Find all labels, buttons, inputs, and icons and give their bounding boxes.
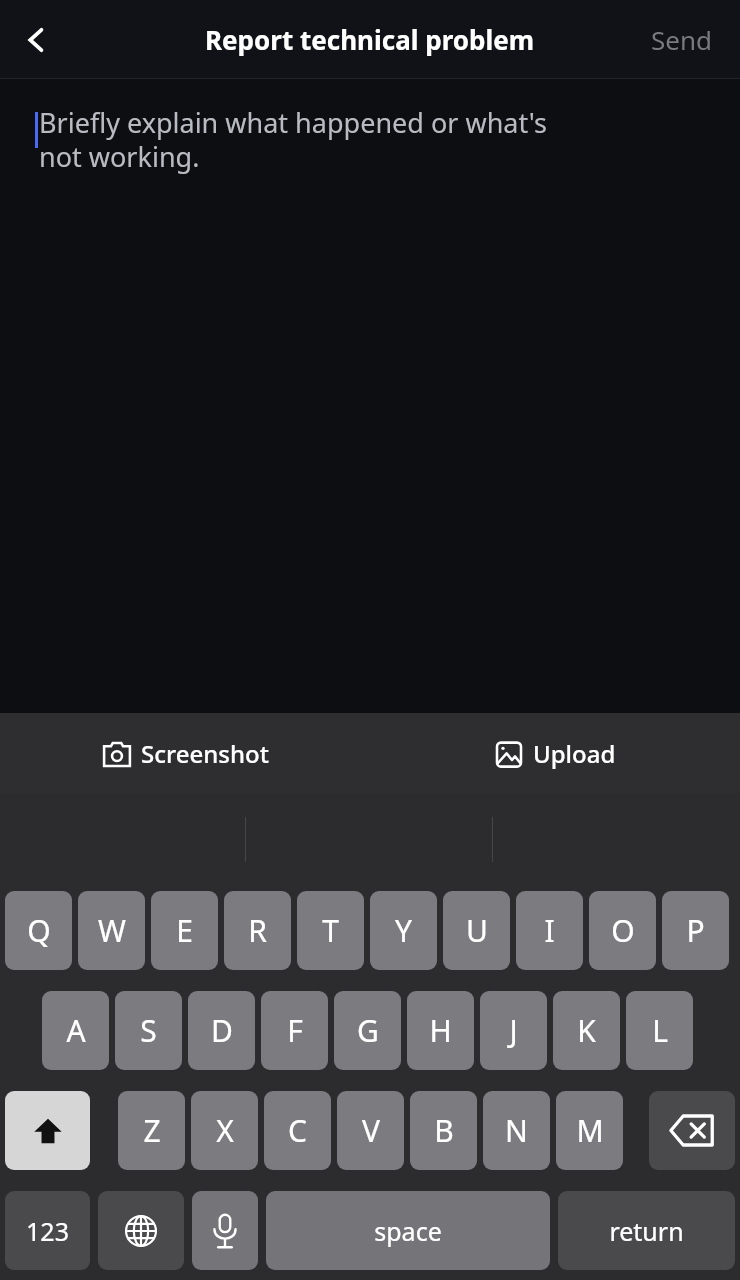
button[interactable]: V bbox=[337, 1091, 404, 1170]
staticText: D bbox=[211, 1010, 233, 1051]
button[interactable]: F bbox=[261, 991, 328, 1070]
button[interactable]: Back bbox=[8, 12, 64, 68]
staticText: M bbox=[576, 1110, 604, 1151]
button[interactable]: G bbox=[334, 991, 401, 1070]
button[interactable]: E bbox=[151, 891, 218, 970]
staticText: E bbox=[176, 910, 193, 951]
button[interactable]: O bbox=[589, 891, 656, 970]
staticText: Screenshot bbox=[141, 737, 269, 770]
staticText: return bbox=[609, 1214, 684, 1248]
button[interactable]: Send bbox=[639, 12, 724, 67]
button[interactable]: Backspace bbox=[649, 1091, 735, 1170]
button[interactable]: return bbox=[558, 1191, 735, 1270]
staticText: 123 bbox=[26, 1214, 69, 1248]
button[interactable]: Screenshot bbox=[0, 713, 370, 793]
staticText: J bbox=[509, 1010, 518, 1051]
staticText: S bbox=[140, 1010, 157, 1051]
staticText: P bbox=[686, 910, 705, 951]
staticText: K bbox=[577, 1010, 596, 1051]
button[interactable]: L bbox=[626, 991, 693, 1070]
staticText: O bbox=[611, 910, 635, 951]
button[interactable]: W bbox=[78, 891, 145, 970]
button[interactable]: Upload bbox=[370, 713, 740, 793]
staticText: B bbox=[434, 1110, 454, 1151]
staticText: W bbox=[98, 910, 126, 951]
button[interactable]: K bbox=[553, 991, 620, 1070]
button[interactable]: S bbox=[115, 991, 182, 1070]
button[interactable]: 123 bbox=[5, 1191, 90, 1270]
staticText: R bbox=[248, 910, 267, 951]
staticText: Upload bbox=[533, 737, 616, 770]
staticText: F bbox=[287, 1010, 303, 1051]
staticText: N bbox=[505, 1110, 528, 1151]
staticText: C bbox=[288, 1110, 307, 1151]
staticText: Z bbox=[143, 1110, 161, 1151]
button[interactable]: Z bbox=[118, 1091, 185, 1170]
button[interactable]: R bbox=[224, 891, 291, 970]
button[interactable]: space bbox=[266, 1191, 550, 1270]
button[interactable]: H bbox=[407, 991, 474, 1070]
button[interactable]: N bbox=[483, 1091, 550, 1170]
staticText: Q bbox=[27, 910, 51, 951]
staticText: H bbox=[429, 1010, 452, 1051]
button[interactable]: Voice input bbox=[192, 1191, 258, 1270]
button[interactable]: M bbox=[556, 1091, 623, 1170]
staticText: U bbox=[466, 910, 488, 951]
staticText: G bbox=[357, 1010, 379, 1051]
button[interactable]: I bbox=[516, 891, 583, 970]
staticText: Y bbox=[395, 910, 412, 951]
button[interactable]: J bbox=[480, 991, 547, 1070]
button[interactable]: T bbox=[297, 891, 364, 970]
button[interactable]: D bbox=[188, 991, 255, 1070]
staticText: I bbox=[544, 910, 555, 951]
staticText: Report technical problem bbox=[205, 22, 535, 57]
button[interactable]: P bbox=[662, 891, 729, 970]
button[interactable]: A bbox=[42, 991, 109, 1070]
staticText: L bbox=[652, 1010, 668, 1051]
staticText: Send bbox=[651, 22, 712, 57]
button[interactable]: Q bbox=[5, 891, 72, 970]
button[interactable]: U bbox=[443, 891, 510, 970]
button[interactable]: B bbox=[410, 1091, 477, 1170]
staticText: space bbox=[374, 1214, 442, 1248]
button[interactable]: Shift bbox=[5, 1091, 90, 1170]
staticText: Briefly explain what happened or what's … bbox=[39, 104, 547, 175]
staticText: X bbox=[216, 1110, 234, 1151]
button[interactable]: X bbox=[191, 1091, 258, 1170]
staticText: A bbox=[66, 1010, 86, 1051]
button[interactable]: Change keyboard language bbox=[98, 1191, 184, 1270]
button[interactable]: Y bbox=[370, 891, 437, 970]
staticText: V bbox=[362, 1110, 380, 1151]
staticText: T bbox=[322, 910, 339, 951]
button[interactable]: C bbox=[264, 1091, 331, 1170]
